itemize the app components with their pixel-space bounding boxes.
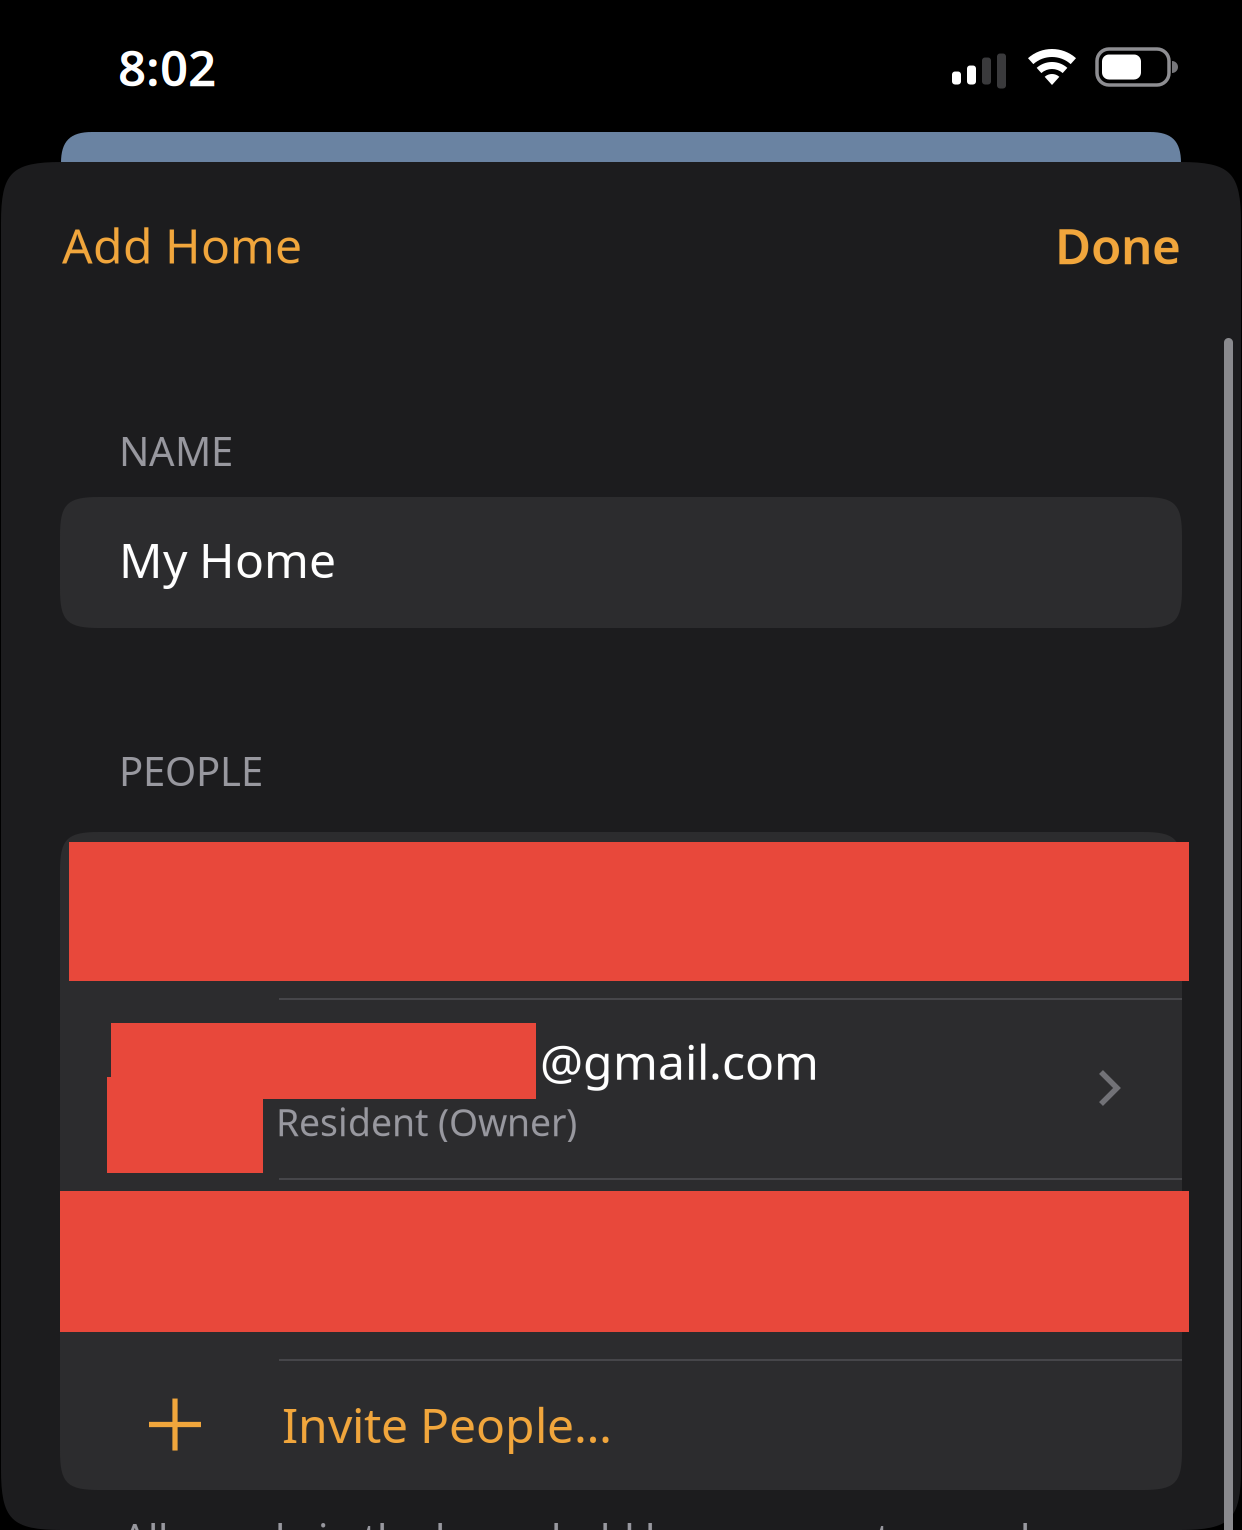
staticText: Add Home [62, 213, 302, 277]
button[interactable]: Home member [60, 1178, 1182, 1359]
staticText: Done [1055, 212, 1181, 278]
button[interactable]: Add Home [62, 205, 362, 285]
button[interactable]: @gmail.com [60, 998, 1182, 1178]
staticText: NAME [119, 424, 233, 477]
staticText: PEOPLE [119, 744, 263, 797]
staticText: My Home [119, 528, 336, 591]
button[interactable]: Home member [60, 832, 1182, 998]
button[interactable]: Done [1051, 205, 1181, 285]
staticText: @gmail.com [276, 1029, 819, 1093]
staticText: All people in the household have access … [122, 1511, 1140, 1530]
staticText: Resident (Owner) [276, 1097, 577, 1147]
staticText: Invite People… [282, 1393, 612, 1456]
button[interactable]: Invite People… [60, 1359, 1182, 1490]
staticText: 8:02 [118, 34, 216, 100]
